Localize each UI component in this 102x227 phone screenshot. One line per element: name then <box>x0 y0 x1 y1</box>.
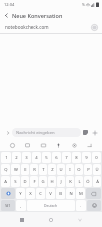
staticText: O <box>77 167 81 173</box>
button[interactable]: I <box>66 164 74 175</box>
button[interactable]: Y <box>16 188 25 199</box>
staticText: 4 <box>35 155 38 161</box>
button[interactable]: R <box>30 164 38 175</box>
button[interactable]: G <box>39 176 47 187</box>
button[interactable]: Back <box>0 9 12 21</box>
button[interactable]: X <box>26 188 35 199</box>
staticText: Nachricht eingeben <box>16 130 79 136</box>
button[interactable]: N <box>66 188 75 199</box>
button[interactable]: Emoji keyboard <box>87 200 101 211</box>
staticText: 3 <box>25 155 28 161</box>
staticText: J <box>60 179 62 185</box>
staticText: . <box>80 203 82 208</box>
staticText: 9 <box>85 155 88 161</box>
staticText: Q <box>4 167 8 173</box>
staticText: Ö <box>86 179 90 185</box>
button[interactable]: 8 <box>72 152 81 163</box>
button[interactable]: S <box>11 176 20 187</box>
staticText: F <box>33 179 36 185</box>
staticText: C <box>39 191 42 197</box>
staticText: B <box>59 191 62 197</box>
button[interactable]: Voice input <box>53 140 64 151</box>
staticText: X <box>29 191 32 197</box>
button[interactable]: Expand <box>3 128 12 137</box>
staticText: W <box>14 167 18 173</box>
button[interactable]: More <box>90 128 99 137</box>
button[interactable]: E <box>21 164 29 175</box>
button[interactable]: , <box>16 200 26 211</box>
button[interactable]: Deutsch <box>27 200 75 211</box>
button[interactable]: J <box>57 176 65 187</box>
staticText: L <box>78 179 81 185</box>
button[interactable]: 6 <box>52 152 61 163</box>
staticText: T <box>42 167 45 173</box>
staticText: A <box>4 179 7 185</box>
button[interactable]: Backspace <box>86 188 101 199</box>
staticText: V <box>49 191 52 197</box>
staticText: 0 <box>95 155 98 161</box>
button[interactable]: Emoji <box>7 140 18 151</box>
button[interactable]: A <box>1 176 10 187</box>
button[interactable]: M <box>76 188 85 199</box>
staticText: Ü <box>95 167 99 173</box>
button[interactable]: Home <box>44 213 58 227</box>
button[interactable]: Shift <box>1 188 15 199</box>
button[interactable]: Recents <box>15 213 29 227</box>
staticText: N <box>69 191 73 197</box>
button[interactable]: L <box>75 176 83 187</box>
button[interactable]: !#1 <box>1 200 15 211</box>
button[interactable]: GIF <box>38 140 49 151</box>
button[interactable]: Ü <box>93 164 101 175</box>
button[interactable]: Stickers <box>22 140 33 151</box>
staticText: K <box>69 179 72 185</box>
staticText: !#1 <box>5 203 11 208</box>
button[interactable]: V <box>46 188 55 199</box>
button[interactable]: O <box>75 164 83 175</box>
staticText: P <box>87 167 90 173</box>
staticText: Y <box>19 191 22 197</box>
staticText: , <box>20 203 22 208</box>
button[interactable]: 2 <box>12 152 21 163</box>
button[interactable]: 1 <box>1 152 11 163</box>
staticText: S <box>14 179 17 185</box>
staticText: D <box>23 179 27 185</box>
button[interactable]: 5 <box>42 152 51 163</box>
button[interactable]: 9 <box>82 152 91 163</box>
button[interactable]: 4 <box>32 152 41 163</box>
button[interactable]: 0 <box>92 152 101 163</box>
button[interactable]: T <box>39 164 47 175</box>
button[interactable]: B <box>56 188 65 199</box>
button[interactable]: W <box>11 164 20 175</box>
staticText: E <box>24 167 27 173</box>
staticText: 1 <box>5 155 8 161</box>
button[interactable]: Z <box>48 164 56 175</box>
button[interactable]: F <box>30 176 38 187</box>
staticText: 7 <box>65 155 68 161</box>
staticText: 5 <box>45 155 48 161</box>
button[interactable]: D <box>21 176 29 187</box>
staticText: notebookcheck.com <box>5 24 91 30</box>
button[interactable]: Settings <box>69 140 80 151</box>
button[interactable]: notebookcheck.com <box>0 21 102 33</box>
staticText: 6 <box>55 155 58 161</box>
button[interactable]: U <box>57 164 65 175</box>
button[interactable]: H <box>48 176 56 187</box>
button[interactable]: Hide keyboard <box>73 213 87 227</box>
button[interactable]: Sticker <box>81 128 90 137</box>
button[interactable]: Q <box>1 164 10 175</box>
button[interactable]: 3 <box>22 152 31 163</box>
button[interactable]: Ä <box>93 176 101 187</box>
button[interactable]: Nachricht eingeben <box>12 128 81 137</box>
staticText: I <box>69 167 71 173</box>
staticText: 8 <box>75 155 78 161</box>
button[interactable]: Ö <box>84 176 92 187</box>
button[interactable]: 7 <box>62 152 71 163</box>
button[interactable]: C <box>36 188 45 199</box>
button[interactable]: . <box>76 200 86 211</box>
button[interactable]: Add recipient <box>91 24 98 31</box>
button[interactable]: Keyboard layout <box>84 140 95 151</box>
button[interactable]: K <box>66 176 74 187</box>
staticText: Deutsch <box>44 203 58 208</box>
staticText: U <box>59 167 63 173</box>
button[interactable]: P <box>84 164 92 175</box>
